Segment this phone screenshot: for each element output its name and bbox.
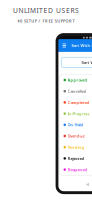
button[interactable]: Approved [60, 74, 92, 86]
staticText: Sort With Filters [81, 60, 92, 65]
staticText: Sort With Filters [71, 43, 92, 48]
staticText: In-Progress [68, 111, 90, 116]
staticText: Overdue [68, 133, 85, 139]
staticText: Pending [68, 144, 85, 150]
staticText: UNLIMITED USERS [13, 6, 79, 15]
button[interactable]: Reopened [60, 164, 92, 175]
staticText: $0 SETUP / FREE SUPPORT [17, 18, 74, 24]
button[interactable]: Back [86, 183, 89, 186]
button[interactable]: Sort With Filters [61, 57, 92, 67]
button[interactable]: Rejected [60, 153, 92, 164]
staticText: On Hold [68, 122, 84, 127]
button[interactable]: Pending [60, 142, 92, 153]
staticText: Reopened [68, 167, 88, 172]
button[interactable]: Menu [61, 42, 67, 49]
staticText: Approved [68, 77, 88, 83]
button[interactable]: Completed [60, 97, 92, 108]
button[interactable]: Overdue [60, 130, 92, 142]
button[interactable]: In-Progress [60, 108, 92, 119]
button[interactable]: Cancelled [60, 86, 92, 97]
staticText: Completed [68, 100, 90, 105]
staticText: Cancelled [68, 88, 87, 94]
staticText: Rejected [68, 156, 85, 161]
button[interactable]: On Hold [60, 119, 92, 130]
